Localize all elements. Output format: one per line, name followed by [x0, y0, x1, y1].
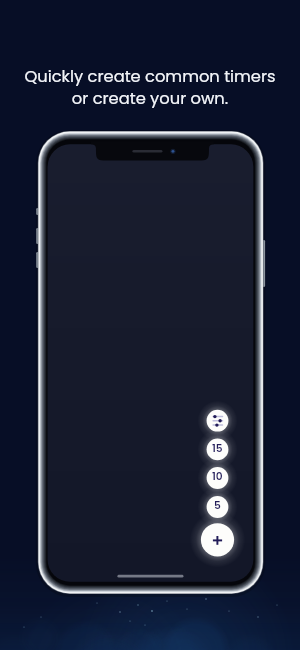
button[interactable]: 5 minute timer — [207, 496, 229, 518]
staticText: Quickly create common timers or create y… — [0, 65, 300, 650]
button[interactable]: Timer presets — [207, 410, 229, 432]
button[interactable]: Add timer — [201, 523, 234, 556]
button[interactable]: 10 minute timer — [207, 467, 229, 489]
button[interactable]: 15 minute timer — [207, 439, 229, 461]
